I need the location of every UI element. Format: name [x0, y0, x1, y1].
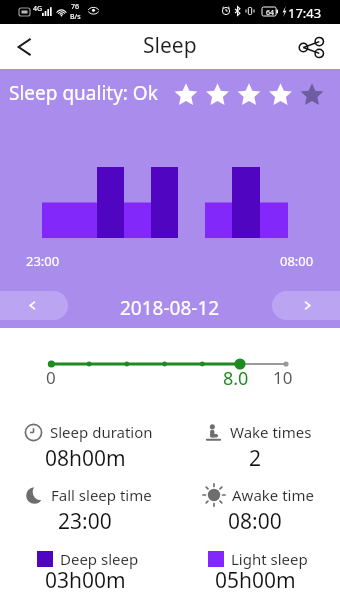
staticText: 08:00	[228, 507, 282, 533]
button[interactable]: Back	[7, 30, 41, 64]
staticText: 76	[71, 2, 80, 12]
button[interactable]: Deep sleep	[0, 537, 170, 595]
staticText: 2018-08-12	[120, 295, 220, 321]
staticText: Light sleep	[231, 549, 308, 569]
staticText: 0	[46, 366, 56, 389]
staticText: 8.0	[223, 366, 249, 391]
staticText: 08:00	[280, 252, 314, 270]
staticText: Fall sleep time	[51, 485, 152, 505]
button[interactable]: Previous day	[0, 291, 68, 320]
staticText: Wake times	[230, 422, 312, 442]
button[interactable]: Light sleep	[170, 537, 340, 595]
staticText: 17:43	[288, 4, 322, 22]
button[interactable]: Next day	[272, 291, 340, 320]
staticText: 08h00m	[45, 444, 126, 470]
button[interactable]: Wake times	[170, 410, 340, 468]
staticText: 64	[266, 8, 275, 18]
button[interactable]: Fall sleep time	[0, 473, 170, 531]
staticText: Awake time	[232, 485, 314, 505]
button[interactable]: Awake time	[170, 473, 340, 531]
staticText: 05h00m	[215, 566, 296, 592]
staticText: 23:00	[58, 507, 112, 533]
staticText: 2	[249, 444, 262, 470]
staticText: 23:00	[26, 252, 60, 270]
button[interactable]: Sleep duration	[0, 410, 170, 468]
staticText: 10	[273, 366, 293, 389]
staticText: Deep sleep	[60, 549, 139, 569]
staticText: Sleep	[143, 31, 197, 60]
staticText: B/s	[70, 12, 81, 22]
staticText: Sleep duration	[50, 422, 153, 442]
button[interactable]: Share	[295, 30, 329, 64]
staticText: 03h00m	[45, 566, 126, 592]
staticText: 4G	[33, 4, 43, 14]
staticText: Sleep quality: Ok	[9, 80, 158, 106]
